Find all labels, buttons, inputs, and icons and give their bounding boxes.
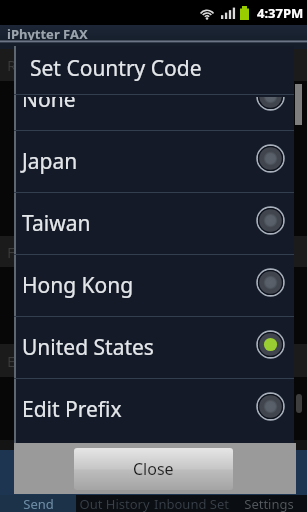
staticText: Inbound Set xyxy=(154,495,229,512)
button[interactable]: Send xyxy=(0,495,76,512)
staticText: Edit Prefix xyxy=(22,395,122,424)
button[interactable]: Edit Prefix xyxy=(14,378,294,440)
staticText: Hong Kong xyxy=(22,271,134,300)
other: Signal strength xyxy=(221,7,233,19)
button[interactable]: Out History xyxy=(76,495,153,512)
other: None xyxy=(255,97,286,112)
staticText: Settings xyxy=(244,495,294,512)
staticText: Out History xyxy=(79,495,150,512)
staticText: Recipient Fax Number xyxy=(7,55,163,75)
button[interactable]: Japan xyxy=(14,130,294,192)
other: United States selected xyxy=(255,329,286,360)
other: Wi-Fi xyxy=(199,7,215,20)
other: Edit Prefix xyxy=(255,391,286,422)
staticText: Fax Subject xyxy=(7,242,87,262)
staticText: 4:37PM xyxy=(257,4,304,22)
staticText: Close xyxy=(133,458,174,480)
staticText: Japan xyxy=(22,147,78,176)
button[interactable]: Settings xyxy=(230,495,307,512)
other: Taiwan xyxy=(255,205,286,236)
staticText: None xyxy=(22,97,76,114)
staticText: Email Address xyxy=(7,351,107,371)
button[interactable]: Taiwan xyxy=(14,192,294,254)
other: Japan xyxy=(255,143,286,174)
staticText: Taiwan xyxy=(22,209,91,238)
button[interactable]: None xyxy=(14,97,294,130)
button[interactable]: United States xyxy=(14,316,294,378)
staticText: iPhytter FAX xyxy=(7,25,88,40)
button[interactable]: Close xyxy=(74,448,233,490)
staticText: Set Country Code xyxy=(30,54,202,83)
button[interactable]: Inbound Set xyxy=(153,495,230,512)
staticText: United States xyxy=(22,333,154,362)
other: Hong Kong xyxy=(255,267,286,298)
other: Battery xyxy=(240,6,249,20)
button[interactable]: Hong Kong xyxy=(14,254,294,316)
staticText: Send xyxy=(23,495,54,512)
